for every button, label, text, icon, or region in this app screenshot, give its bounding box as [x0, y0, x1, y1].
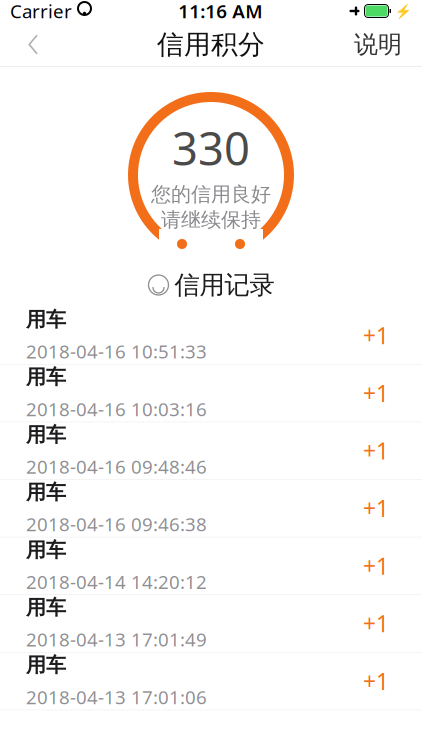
- staticText: +1: [363, 378, 389, 408]
- button[interactable]: 用车: [0, 537, 422, 595]
- staticText: 用车: [26, 653, 66, 677]
- staticText: +1: [363, 666, 389, 696]
- button[interactable]: 用车: [0, 653, 422, 710]
- button[interactable]: 用车: [0, 307, 422, 365]
- staticText: +1: [363, 608, 389, 638]
- staticText: 信用记录: [174, 269, 274, 300]
- staticText: 用车: [26, 422, 66, 447]
- staticText: 2018-04-16 09:46:38: [26, 512, 207, 536]
- staticText: ⚡: [395, 3, 412, 19]
- staticText: 信用积分: [157, 28, 265, 61]
- staticText: 2018-04-13 17:01:06: [26, 684, 207, 709]
- staticText: 用车: [26, 595, 66, 620]
- staticText: 2018-04-16 09:48:46: [26, 454, 207, 479]
- staticText: 11:16 AM: [178, 0, 262, 23]
- staticText: 330: [172, 118, 250, 178]
- button[interactable]: 用车: [0, 480, 422, 537]
- staticText: +1: [363, 320, 389, 350]
- staticText: 用车: [26, 365, 66, 389]
- staticText: 说明: [354, 30, 402, 59]
- staticText: +1: [363, 551, 389, 581]
- staticText: 用车: [26, 538, 66, 562]
- staticText: 2018-04-14 14:20:12: [26, 569, 207, 594]
- staticText: 请继续保持: [161, 208, 261, 232]
- button[interactable]: 用车: [0, 365, 422, 422]
- staticText: 您的信用良好: [151, 182, 271, 207]
- staticText: 2018-04-13 17:01:49: [26, 627, 207, 652]
- button[interactable]: 说明: [340, 22, 416, 67]
- button[interactable]: 用车: [0, 422, 422, 480]
- staticText: 用车: [26, 480, 66, 505]
- staticText: Carrier: [10, 0, 72, 23]
- button[interactable]: 用车: [0, 595, 422, 653]
- button[interactable]: Back: [6, 22, 60, 67]
- staticText: 2018-04-16 10:51:33: [26, 339, 207, 364]
- staticText: 用车: [26, 307, 66, 332]
- staticText: +1: [363, 436, 389, 466]
- staticText: +1: [363, 493, 389, 523]
- staticText: 2018-04-16 10:03:16: [26, 396, 207, 421]
